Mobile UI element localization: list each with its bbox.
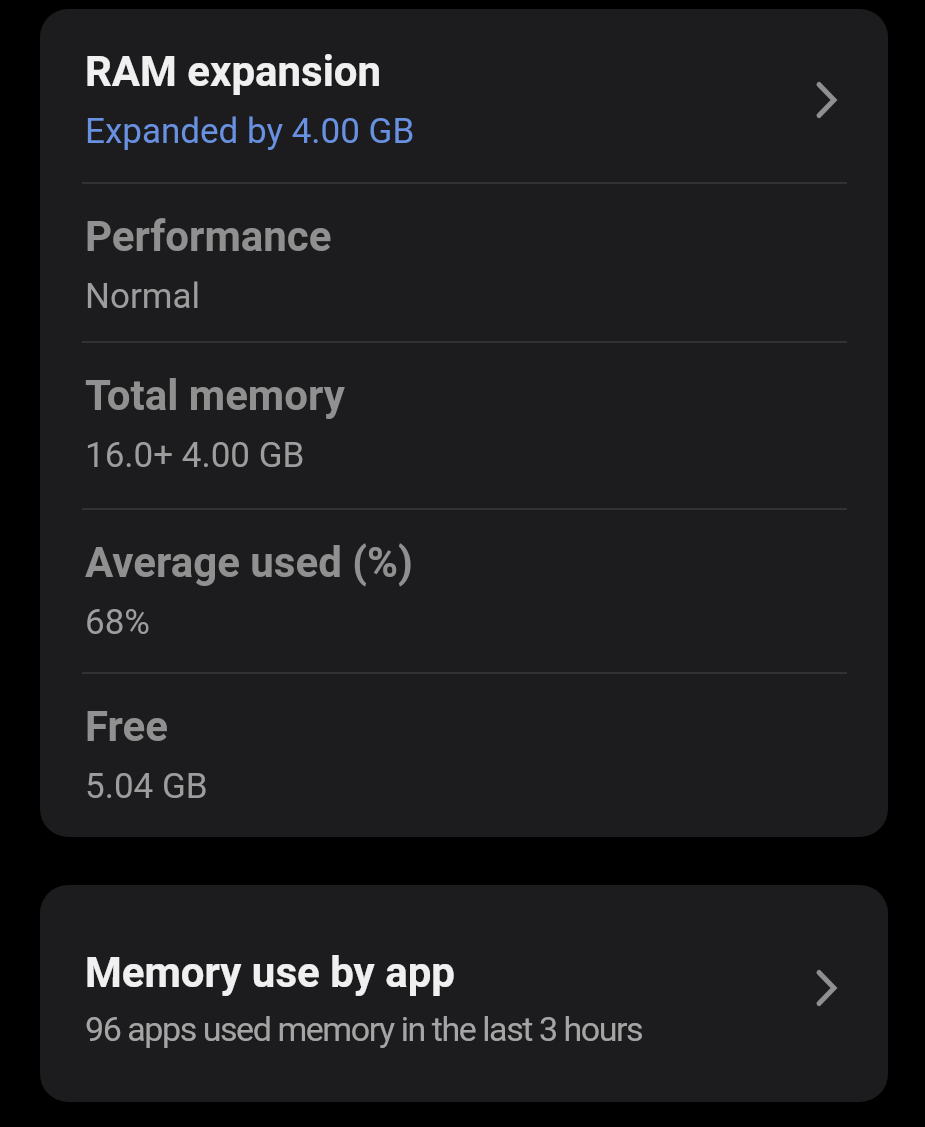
staticText: Expanded by 4.00 GB: [85, 111, 415, 152]
staticText: Performance: [85, 212, 332, 261]
staticText: Total memory: [85, 371, 345, 420]
staticText: Normal: [85, 276, 201, 317]
staticText: 16.0+ 4.00 GB: [85, 435, 305, 476]
staticText: Average used (%): [85, 538, 413, 587]
staticText: RAM expansion: [85, 47, 382, 96]
staticText: 5.04 GB: [85, 766, 208, 807]
staticText: Free: [85, 702, 168, 751]
staticText: 96 apps used memory in the last 3 hours: [85, 1009, 643, 1049]
button[interactable]: RAM expansion: [40, 9, 888, 182]
button[interactable]: Memory use by app: [40, 885, 888, 1102]
staticText: Memory use by app: [85, 948, 455, 997]
staticText: 68%: [85, 602, 150, 643]
